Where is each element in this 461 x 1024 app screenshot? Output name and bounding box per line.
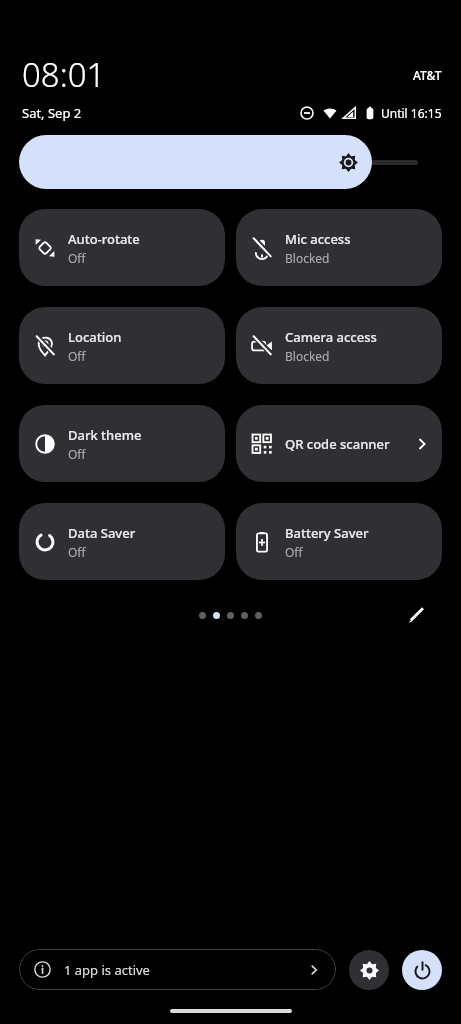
staticText: Dark theme [68, 426, 142, 444]
staticText: Blocked [285, 348, 330, 364]
button[interactable]: Data Saver [19, 503, 225, 580]
staticText: Off [285, 544, 303, 560]
button[interactable]: Brightness [19, 135, 372, 189]
button[interactable]: Dark theme [19, 405, 225, 482]
staticText: Off [68, 250, 86, 266]
button[interactable]: Settings [349, 950, 389, 990]
staticText: Mic access [285, 230, 351, 248]
button[interactable]: Auto-rotate [19, 209, 225, 286]
staticText: Location [68, 328, 122, 346]
staticText: Battery Saver [285, 524, 369, 542]
staticText: Off [68, 446, 86, 462]
button[interactable]: Edit tiles [401, 601, 429, 629]
staticText: Off [68, 544, 86, 560]
button[interactable]: 1 app is active [19, 949, 336, 990]
button[interactable]: Camera access [236, 307, 442, 384]
staticText: 08:01 [22, 52, 106, 97]
staticText: Data Saver [68, 524, 136, 542]
button[interactable]: Battery Saver [236, 503, 442, 580]
button[interactable]: Location [19, 307, 225, 384]
staticText: 1 app is active [64, 961, 150, 979]
staticText: Camera access [285, 328, 377, 346]
staticText: AT&T [413, 67, 442, 83]
staticText: Blocked [285, 250, 330, 266]
button[interactable]: Power [402, 950, 442, 990]
staticText: Sat, Sep 2 [22, 104, 82, 122]
staticText: Until 16:15 [381, 105, 442, 121]
staticText: Auto-rotate [68, 230, 140, 248]
staticText: QR code scanner [285, 435, 390, 453]
button[interactable]: QR code scanner [236, 405, 442, 482]
staticText: Off [68, 348, 86, 364]
button[interactable]: Mic access [236, 209, 442, 286]
